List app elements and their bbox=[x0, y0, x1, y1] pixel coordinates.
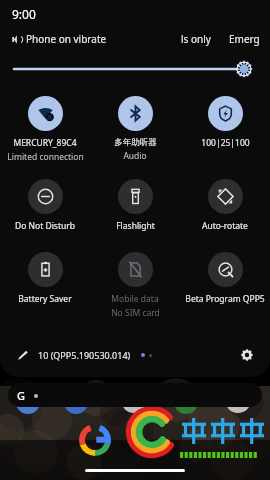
button[interactable]: Beta Program QPP5 bbox=[180, 252, 270, 305]
staticText: Beta Program QPP5 bbox=[185, 293, 265, 305]
button[interactable]: Edit tiles bbox=[12, 345, 32, 365]
staticText: Mobile data bbox=[111, 293, 159, 305]
button[interactable]: Auto-rotate bbox=[180, 179, 270, 232]
button[interactable]: Settings bbox=[236, 344, 258, 366]
button[interactable]: 100|25|100 bbox=[180, 96, 270, 149]
button[interactable]: Brightness bbox=[14, 59, 256, 79]
staticText: Auto-rotate bbox=[202, 220, 248, 232]
staticText: Battery Saver bbox=[18, 293, 72, 305]
staticText: MERCURY_89C4 bbox=[13, 137, 77, 149]
button[interactable]: 多年助听器 bbox=[90, 96, 180, 162]
button[interactable]: Mobile data bbox=[90, 252, 180, 319]
button[interactable]: Flashlight bbox=[90, 179, 180, 232]
staticText: 多年助听器 bbox=[114, 137, 157, 148]
staticText: Limited connection bbox=[7, 151, 84, 163]
button[interactable]: Google search bbox=[8, 383, 262, 407]
staticText: No SIM card bbox=[111, 307, 160, 319]
staticText: G bbox=[17, 388, 25, 403]
button[interactable]: Emerg bbox=[229, 32, 260, 46]
staticText: 100|25|100 bbox=[201, 137, 250, 149]
other: Vibrate bbox=[10, 34, 21, 45]
button[interactable]: MERCURY_89C4 bbox=[0, 96, 90, 163]
button[interactable]: Battery Saver bbox=[0, 252, 90, 305]
button[interactable]: 10 (QPP5.190530.014) bbox=[38, 349, 131, 361]
staticText: Audio bbox=[123, 150, 147, 162]
button[interactable]: Vibrate bbox=[10, 32, 107, 46]
staticText: Do Not Disturb bbox=[15, 220, 75, 232]
staticText: Phone on vibrate bbox=[26, 32, 107, 46]
staticText: Flashlight bbox=[116, 220, 155, 232]
staticText: 9:00 bbox=[12, 6, 36, 22]
button[interactable]: ls only bbox=[181, 32, 211, 46]
button[interactable]: Do Not Disturb bbox=[0, 179, 90, 232]
